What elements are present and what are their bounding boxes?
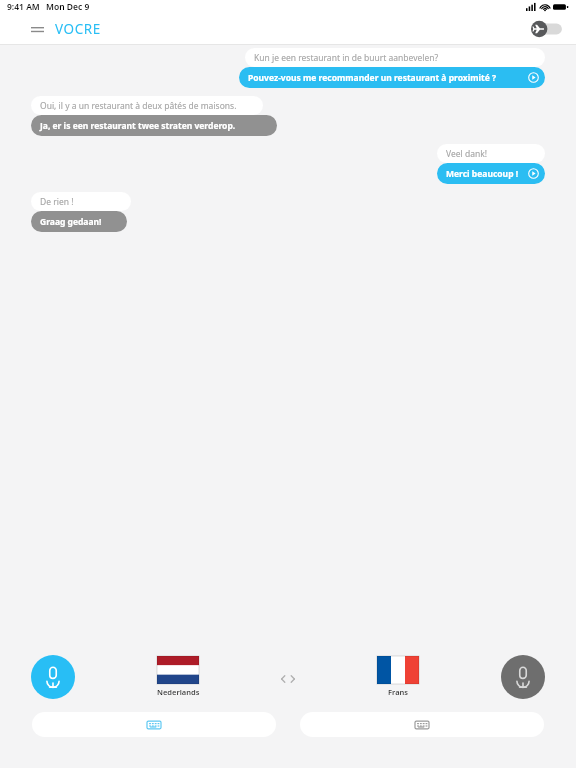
staticText: Frans xyxy=(388,687,409,697)
button[interactable]: Ja, er is een restaurant twee straten ve… xyxy=(31,115,277,136)
staticText: VOCRE xyxy=(55,20,101,38)
button[interactable]: De rien ! xyxy=(31,192,131,211)
button[interactable]: Swap languages xyxy=(271,670,305,688)
staticText: De rien ! xyxy=(40,196,74,208)
staticText: Mon Dec 9 xyxy=(46,1,90,13)
staticText: Nederlands xyxy=(157,687,200,697)
staticText: Ja, er is een restaurant twee straten ve… xyxy=(40,120,236,132)
staticText: Pouvez-vous me recommander un restaurant… xyxy=(248,72,497,84)
button[interactable]: French keyboard input xyxy=(300,712,544,737)
button[interactable]: Record French xyxy=(501,655,545,699)
staticText: Veel dank! xyxy=(446,148,487,160)
staticText: Graag gedaan! xyxy=(40,216,102,228)
button[interactable]: Pouvez-vous me recommander un restaurant… xyxy=(239,67,545,88)
button[interactable]: Record Dutch xyxy=(31,655,75,699)
button[interactable]: Airplane mode xyxy=(530,19,568,39)
button[interactable]: Frans xyxy=(372,656,424,697)
button[interactable]: Graag gedaan! xyxy=(31,211,127,232)
button[interactable]: Nederlands xyxy=(152,656,204,697)
button[interactable]: Dutch keyboard input xyxy=(32,712,276,737)
staticText: Oui, il y a un restaurant à deux pâtés d… xyxy=(40,100,237,112)
button[interactable]: Menu xyxy=(26,17,48,41)
button[interactable]: Merci beaucoup ! xyxy=(437,163,545,184)
staticText: Merci beaucoup ! xyxy=(446,168,519,180)
button[interactable]: Kun je een restaurant in de buurt aanbev… xyxy=(245,48,545,67)
button[interactable]: Oui, il y a un restaurant à deux pâtés d… xyxy=(31,96,263,115)
staticText: 9:41 AM xyxy=(7,1,40,13)
button[interactable]: Veel dank! xyxy=(437,144,545,163)
staticText: Kun je een restaurant in de buurt aanbev… xyxy=(254,52,439,64)
